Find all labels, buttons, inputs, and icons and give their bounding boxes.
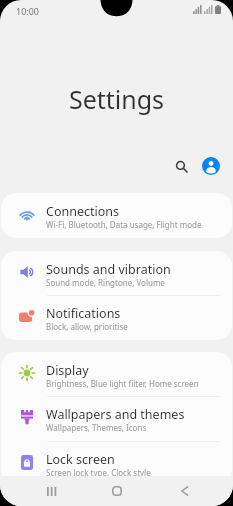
button[interactable]: Notifications	[1, 295, 232, 339]
staticText: 10:00	[16, 5, 40, 17]
staticText: Sound mode, Ringtone, Volume	[46, 277, 165, 288]
staticText: Block, allow, prioritise	[46, 321, 128, 332]
staticText: Screen lock type, Clock style	[46, 467, 151, 478]
button[interactable]: Lock screen	[1, 441, 232, 485]
staticText: Brightness, Blue light filter, Home scre…	[46, 378, 199, 389]
staticText: Wi-Fi, Bluetooth, Data usage, Flight mod…	[46, 219, 202, 230]
staticText: Connections	[46, 203, 119, 220]
button[interactable]: Search	[168, 153, 194, 179]
button[interactable]: Back	[153, 476, 215, 506]
staticText: Settings	[0, 82, 233, 116]
staticText: Wallpapers, Themes, Icons	[46, 422, 147, 433]
staticText: Sounds and vibration	[46, 261, 171, 278]
button[interactable]: Wallpapers and themes	[1, 396, 232, 440]
staticText: Wallpapers and themes	[46, 406, 185, 423]
button[interactable]: Home	[86, 476, 148, 506]
button[interactable]: Account	[198, 153, 224, 179]
button[interactable]: Display	[1, 352, 232, 396]
staticText: Lock screen	[46, 451, 115, 468]
button[interactable]: Recent apps	[21, 476, 83, 506]
staticText: Display	[46, 362, 89, 379]
button[interactable]: Sounds and vibration	[1, 251, 232, 295]
staticText: Notifications	[46, 305, 121, 322]
button[interactable]: Connections	[1, 193, 232, 237]
